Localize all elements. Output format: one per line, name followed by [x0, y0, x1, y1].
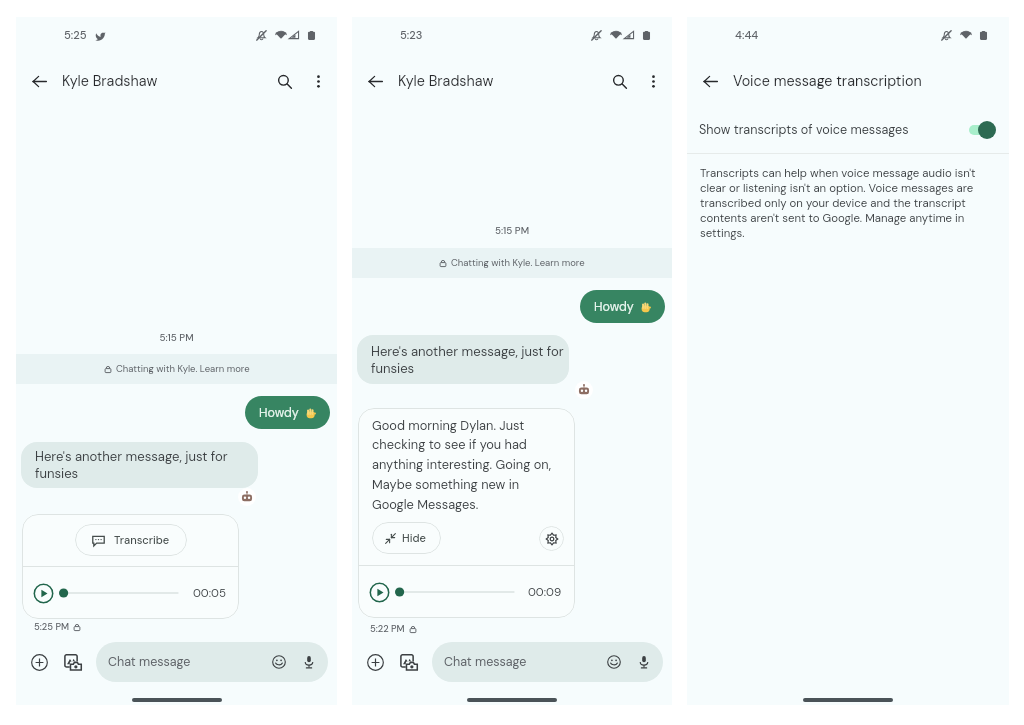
button[interactable]: Search: [270, 67, 298, 95]
staticText: Kyle Bradshaw: [62, 72, 158, 91]
button[interactable]: Open gallery: [58, 647, 88, 677]
staticText: 00:05: [193, 586, 226, 601]
staticText: 5:25: [64, 28, 87, 43]
button[interactable]: Chatting with Kyle. Learn more: [352, 248, 672, 278]
button[interactable]: Search: [605, 67, 633, 95]
button[interactable]: Transcribe: [75, 524, 187, 556]
button[interactable]: Howdy: [580, 290, 665, 323]
button[interactable]: Settings: [539, 526, 564, 551]
button[interactable]: Howdy: [245, 396, 330, 429]
staticText: Kyle Bradshaw: [398, 72, 494, 91]
staticText: 5:25 PM: [34, 621, 69, 633]
staticText: Howdy: [259, 405, 299, 421]
button[interactable]: More options: [306, 69, 330, 93]
staticText: Voice message transcription: [733, 72, 922, 91]
button[interactable]: More options: [641, 69, 665, 93]
button[interactable]: Back: [695, 66, 725, 96]
button[interactable]: Back: [24, 66, 54, 96]
button[interactable]: Add attachment: [24, 647, 54, 677]
staticText: Chat message: [444, 654, 527, 670]
staticText: Transcripts can help when voice message …: [700, 166, 995, 241]
staticText: Transcribe: [114, 533, 170, 547]
button[interactable]: Play: [33, 583, 54, 604]
staticText: 5:15 PM: [352, 224, 672, 237]
button[interactable]: Back: [360, 66, 390, 96]
staticText: 5:22 PM: [370, 623, 405, 635]
button[interactable]: Chat message: [432, 642, 663, 682]
button[interactable]: Chatting with Kyle. Learn more: [16, 354, 337, 384]
staticText: Howdy: [594, 299, 634, 315]
staticText: Show transcripts of voice messages: [699, 122, 909, 138]
staticText: 5:23: [400, 28, 423, 43]
button[interactable]: Show transcripts of voice messages: [687, 112, 1009, 148]
staticText: Chatting with Kyle. Learn more: [451, 257, 585, 269]
staticText: Hide: [402, 531, 426, 545]
staticText: 00:09: [528, 585, 562, 600]
staticText: Here's another message, just for funsies: [35, 448, 228, 482]
button[interactable]: Play: [369, 582, 390, 603]
button[interactable]: Add attachment: [360, 647, 390, 677]
button[interactable]: Hide: [372, 522, 441, 554]
button[interactable]: Open gallery: [394, 647, 424, 677]
staticText: 4:44: [735, 28, 759, 43]
staticText: Chatting with Kyle. Learn more: [116, 363, 250, 375]
button[interactable]: Chat message: [96, 642, 328, 682]
staticText: Good morning Dylan. Just checking to see…: [372, 417, 552, 513]
staticText: Chat message: [108, 654, 191, 670]
staticText: 5:15 PM: [16, 331, 337, 344]
button[interactable]: Here's another message, just for funsies: [21, 442, 258, 488]
staticText: Here's another message, just for funsies: [371, 343, 564, 377]
button[interactable]: Here's another message, just for funsies: [357, 335, 569, 384]
